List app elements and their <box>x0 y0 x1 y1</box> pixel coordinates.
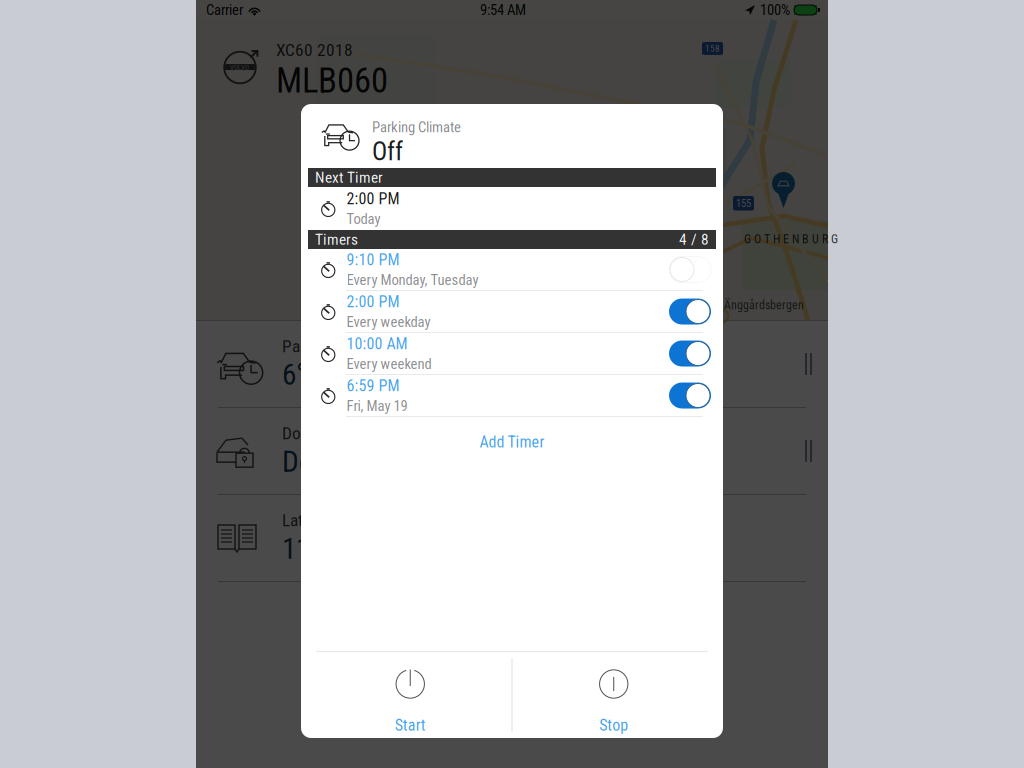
staticText: 4 / 8 <box>679 230 709 248</box>
staticText: Off <box>372 137 403 166</box>
staticText: Every weekday <box>346 313 430 330</box>
staticText: Start <box>395 716 426 735</box>
staticText: Today <box>346 210 380 227</box>
staticText: Every Monday, Tuesday <box>346 271 478 288</box>
staticText: G O T H E N B U R G <box>744 232 838 246</box>
staticText: 6°C <box>282 357 324 392</box>
button[interactable]: Start <box>301 652 511 738</box>
button[interactable]: Latest trip <box>196 495 828 581</box>
staticText: 155 <box>736 197 751 209</box>
staticText: 9:54 AM <box>480 1 526 19</box>
staticText: Add Timer <box>479 433 544 451</box>
staticText: VOLVO <box>230 63 249 71</box>
staticText: 9:10 PM <box>346 250 399 269</box>
staticText: Fri, May 19 <box>346 397 407 414</box>
staticText: Doors & locks <box>282 423 377 443</box>
staticText: 2:00 PM <box>346 189 399 208</box>
button[interactable]: 2:00 PM <box>301 291 723 332</box>
staticText: 2:00 PM <box>346 292 399 311</box>
staticText: 11:59 <box>282 531 345 566</box>
button[interactable]: 2:00 PM <box>301 187 723 230</box>
button[interactable]: Add Timer <box>301 417 723 467</box>
staticText: Latest trip <box>282 510 351 530</box>
staticText: 100% <box>760 1 790 19</box>
button[interactable]: 10:00 AM <box>301 333 723 374</box>
staticText: Carrier <box>206 1 243 19</box>
staticText: MLB060 <box>276 60 388 101</box>
staticText: Parking Climate <box>372 119 461 136</box>
button[interactable]: 6:59 PM <box>301 375 723 416</box>
staticText: Parking climate <box>282 336 388 356</box>
staticText: Next Timer <box>315 168 383 186</box>
staticText: XC60 2018 <box>276 40 353 60</box>
button[interactable]: Parking climate <box>196 321 828 407</box>
button[interactable]: Doors & locks <box>196 408 828 494</box>
button[interactable]: 9:10 PM <box>301 249 723 290</box>
staticText: 6:59 PM <box>346 376 399 395</box>
staticText: 158 <box>705 43 720 54</box>
staticText: Every weekend <box>346 355 431 372</box>
staticText: Stop <box>599 716 628 735</box>
staticText: Doors locked <box>282 444 436 479</box>
button[interactable]: Stop <box>512 652 723 738</box>
staticText: 10:00 AM <box>346 334 407 353</box>
staticText: Timers <box>315 230 358 248</box>
staticText: Änggårdsbergen <box>724 298 804 312</box>
